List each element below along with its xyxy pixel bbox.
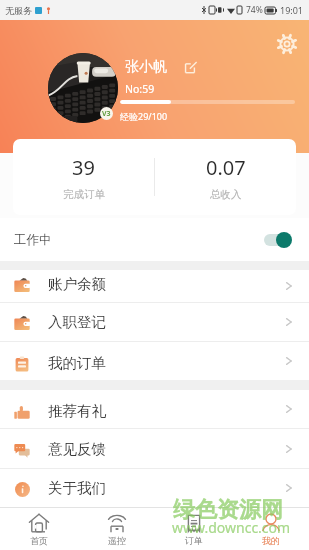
staticText: 39 xyxy=(72,154,95,181)
button[interactable]: 我的订单 xyxy=(0,342,309,380)
staticText: 我的订单 xyxy=(48,354,106,372)
staticText: 关于我们 xyxy=(48,479,106,497)
staticText: 工作中 xyxy=(14,232,52,248)
staticText: V3 xyxy=(102,109,111,119)
staticText: 完成订单 xyxy=(63,188,105,201)
button[interactable]: 工作中 xyxy=(0,218,309,261)
staticText: 绿色资源网 xyxy=(173,496,283,524)
staticText: 张小帆 xyxy=(125,58,167,76)
button[interactable]: Edit profile xyxy=(184,61,197,74)
staticText: 总收入 xyxy=(210,188,242,201)
button[interactable]: 账户余额 xyxy=(0,270,309,302)
button[interactable]: 首页 xyxy=(0,508,78,550)
staticText: 意见反馈 xyxy=(48,440,106,458)
button[interactable]: 推荐有礼 xyxy=(0,390,309,428)
staticText: 74% xyxy=(246,4,263,16)
staticText: 无服务 xyxy=(5,5,32,16)
button[interactable]: 我的 xyxy=(232,508,309,550)
staticText: 推荐有礼 xyxy=(48,402,106,420)
staticText: 订单 xyxy=(185,535,203,546)
staticText: 19:01 xyxy=(280,4,304,16)
staticText: No:59 xyxy=(125,82,155,96)
button[interactable]: 入职登记 xyxy=(0,303,309,341)
button[interactable]: 遥控 xyxy=(78,508,155,550)
staticText: 经验29/100 xyxy=(120,110,168,122)
button[interactable]: 关于我们 xyxy=(0,469,309,507)
button[interactable]: 意见反馈 xyxy=(0,429,309,468)
staticText: 我的 xyxy=(262,535,280,546)
staticText: 遥控 xyxy=(108,535,126,546)
staticText: www.downcc.com xyxy=(172,518,291,537)
button[interactable]: 订单 xyxy=(155,508,232,550)
button[interactable]: Settings xyxy=(275,32,299,56)
staticText: 首页 xyxy=(30,535,48,546)
staticText: 0.07 xyxy=(206,154,246,181)
staticText: 入职登记 xyxy=(48,313,106,331)
staticText: 账户余额 xyxy=(48,275,106,293)
